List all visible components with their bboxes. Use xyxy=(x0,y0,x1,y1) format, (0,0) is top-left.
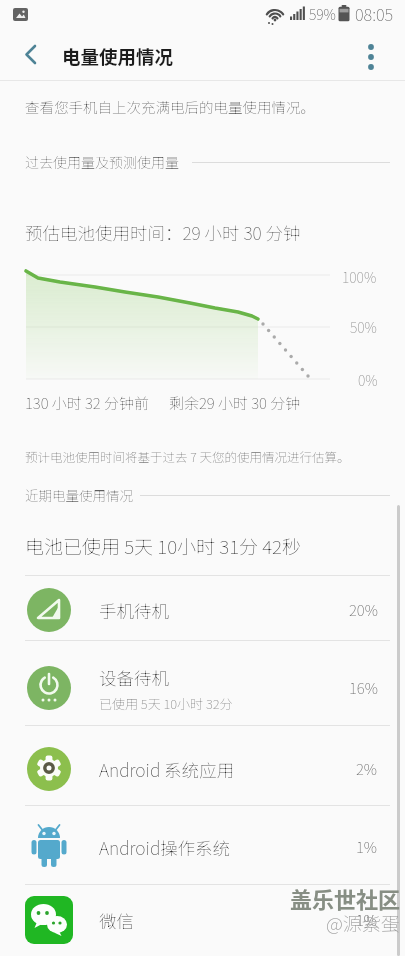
staticText: 100% xyxy=(342,267,377,287)
staticText: Android操作系统 xyxy=(99,835,231,860)
staticText: 20% xyxy=(349,599,378,621)
button[interactable]: 设备待机 xyxy=(0,646,405,730)
button[interactable]: 微信 xyxy=(0,884,405,956)
staticText: 59% xyxy=(309,4,336,24)
staticText: 50% xyxy=(350,317,377,337)
staticText: 剩余29 小时 30 分钟 xyxy=(169,392,301,414)
staticText: 微信 xyxy=(99,908,134,933)
staticText: 1% xyxy=(356,909,378,931)
staticText: Android 系统应用 xyxy=(99,757,235,782)
staticText: @源紫蛋 xyxy=(326,909,400,937)
button[interactable]: 手机待机 xyxy=(0,578,405,642)
staticText: 电量使用情况 xyxy=(62,43,174,70)
staticText: 130 小时 32 分钟前 xyxy=(25,392,149,414)
staticText: 2% xyxy=(356,758,378,780)
staticText: 1% xyxy=(356,836,378,858)
staticText: 手机待机 xyxy=(99,598,169,623)
staticText: 0% xyxy=(358,370,378,390)
staticText: 预计电池使用时间将基于过去 7 天您的使用情况进行估算。 xyxy=(25,447,350,465)
staticText: 电池已使用 5天 10小时 31分 42秒 xyxy=(25,532,302,560)
staticText: 08:05 xyxy=(355,2,394,26)
button[interactable]: Android 系统应用 xyxy=(0,731,405,807)
button[interactable]: Android操作系统 xyxy=(0,809,405,885)
staticText: 设备待机 xyxy=(99,665,169,690)
staticText: 查看您手机自上次充满电后的电量使用情况。 xyxy=(25,96,315,117)
staticText: 盖乐世社区 xyxy=(290,882,401,914)
button[interactable] xyxy=(349,33,393,80)
staticText: 16% xyxy=(349,677,378,699)
staticText: 已使用 5天 10小时 32分 xyxy=(99,694,233,713)
staticText: 近期电量使用情况 xyxy=(25,485,133,505)
staticText: 预估电池使用时间：29 小时 30 分钟 xyxy=(25,220,301,245)
staticText: 过去使用量及预测使用量 xyxy=(25,152,179,172)
button[interactable] xyxy=(8,32,54,77)
